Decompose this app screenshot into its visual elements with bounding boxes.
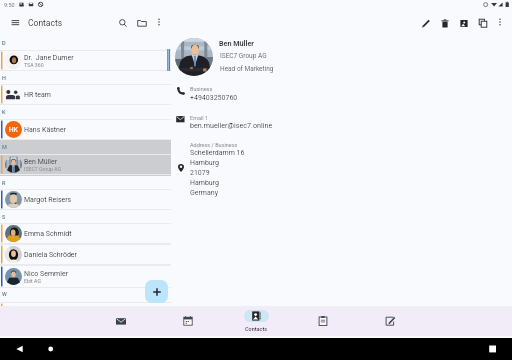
button[interactable]: More contact options (493, 15, 507, 29)
button[interactable]: HK (0, 119, 171, 140)
button[interactable]: Ben Müller (0, 154, 171, 175)
button[interactable]: HR team (0, 84, 171, 105)
staticText: 21079 (190, 169, 210, 177)
button[interactable]: Emma Schmidt (0, 223, 171, 244)
staticText: ISEC7 Group AG (24, 166, 62, 172)
staticText: TSA 360 (24, 62, 44, 68)
button[interactable]: Nico Semmler (0, 265, 171, 288)
staticText: Contacts (232, 326, 280, 332)
staticText: Dr. Jane Dumer (24, 54, 74, 62)
button[interactable]: Dr. Jane Dumer (0, 50, 171, 71)
staticText: Hamburg (190, 159, 219, 167)
staticText: Email 1 (190, 115, 209, 121)
staticText: Margot Reisers (24, 196, 72, 204)
staticText: HK (9, 126, 18, 134)
staticText: D (2, 40, 6, 46)
staticText: ISEC7 Group AG (220, 52, 267, 60)
staticText: S (2, 214, 6, 220)
staticText: Daniela Schröder (24, 251, 77, 259)
button[interactable]: Tasks (299, 306, 347, 336)
staticText: Ben Müller (24, 158, 58, 166)
button[interactable]: Contacts (232, 306, 280, 336)
button[interactable]: More options (152, 15, 166, 29)
staticText: +49403250760 (190, 94, 238, 102)
button[interactable]: Search (116, 16, 130, 30)
staticText: Nico Semmler (24, 270, 69, 278)
staticText: Head of Marketing (220, 65, 274, 73)
staticText: H (2, 75, 6, 81)
button[interactable]: Compose (366, 306, 414, 336)
staticText: ben.mueller@isec7.online (190, 121, 273, 129)
button[interactable]: Daniela Schröder (0, 244, 171, 265)
button[interactable]: Open navigation drawer (8, 15, 22, 29)
staticText: HR team (24, 91, 51, 99)
staticText: Address / Business (190, 142, 238, 148)
staticText: W (2, 291, 7, 297)
button[interactable]: Edit contact (419, 16, 433, 30)
button[interactable]: Folders (135, 16, 149, 30)
staticText: Contacts (28, 18, 63, 28)
staticText: Emma Schmidt (24, 230, 72, 238)
button[interactable]: Mail (97, 306, 145, 336)
staticText: Ben Müller (219, 39, 254, 47)
button[interactable]: Calendar (164, 306, 212, 336)
staticText: K (2, 109, 6, 115)
button[interactable]: Send email (171, 112, 512, 134)
button[interactable]: Open address in maps (171, 139, 512, 199)
staticText: Hamburg (190, 179, 219, 187)
staticText: Germany (190, 189, 218, 197)
button[interactable]: Set photo (457, 16, 471, 30)
staticText: 9:50 (4, 2, 15, 8)
staticText: Hans Kästner (24, 126, 67, 134)
staticText: M (2, 144, 7, 150)
button[interactable]: Create contact (145, 280, 168, 303)
button[interactable]: Copy contact (476, 16, 490, 30)
staticText: Schellerdamm 16 (190, 149, 245, 157)
staticText: R (2, 180, 6, 186)
button[interactable]: Delete contact (438, 16, 452, 30)
staticText: Ebit AG (24, 278, 41, 284)
button[interactable]: Call business number (171, 84, 512, 106)
staticText: Business (190, 86, 213, 92)
button[interactable]: Margot Reisers (0, 189, 171, 210)
